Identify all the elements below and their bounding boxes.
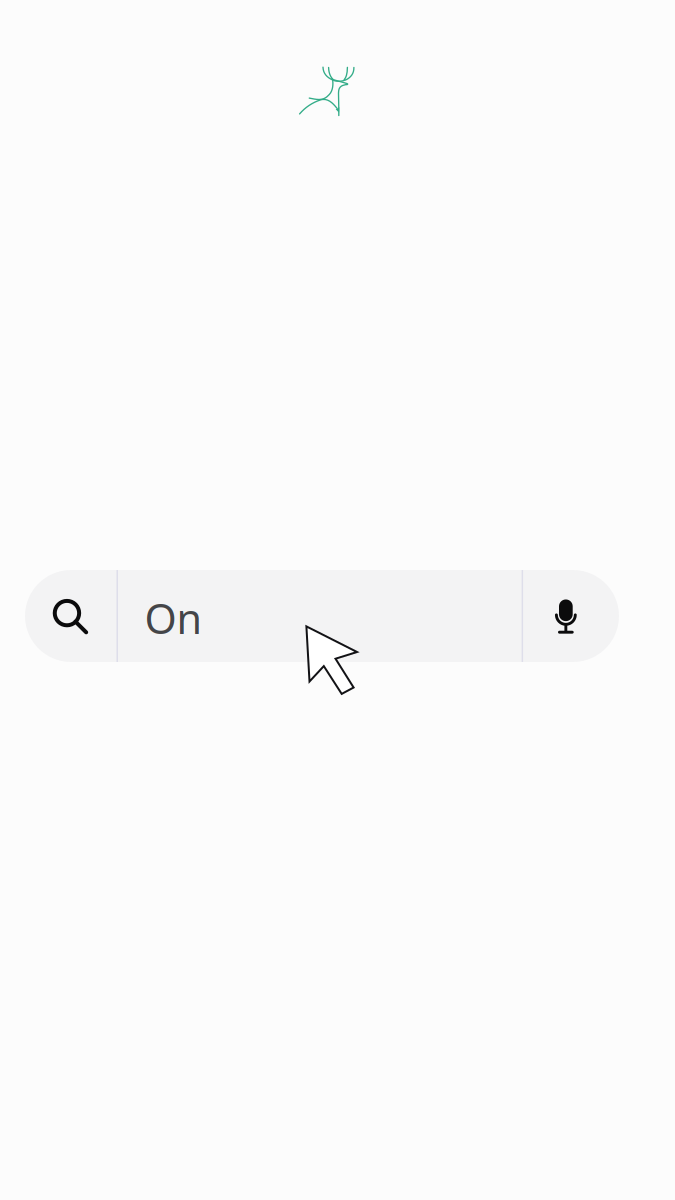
- button[interactable]: Search by voice: [523, 570, 619, 662]
- button[interactable]: On: [118, 570, 522, 662]
- button[interactable]: Search: [25, 570, 116, 662]
- staticText: On: [144, 591, 202, 645]
